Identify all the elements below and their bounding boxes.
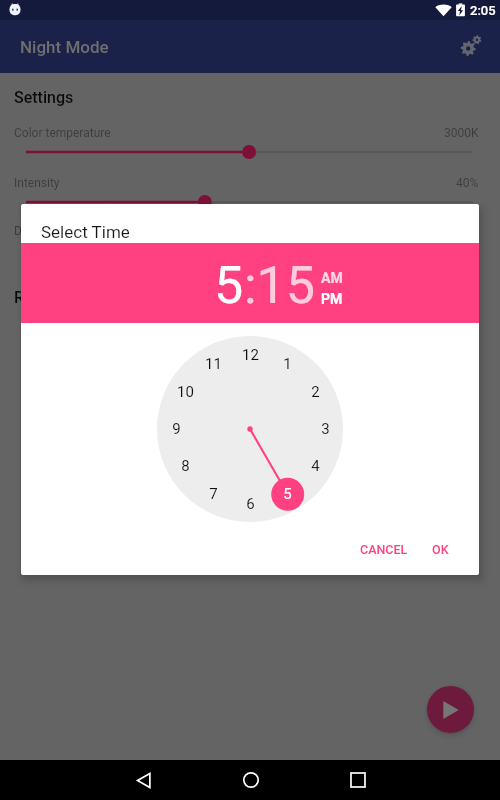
staticText: 2:05	[470, 3, 496, 18]
button[interactable]: 5	[273, 480, 301, 508]
button[interactable]: 8	[171, 452, 199, 480]
button[interactable]: CANCEL	[351, 535, 417, 564]
button[interactable]: 3	[311, 415, 339, 443]
button[interactable]: Home	[231, 760, 271, 800]
button[interactable]: 9	[162, 415, 190, 443]
staticText: Color temperature	[14, 126, 111, 140]
staticText: OK	[432, 542, 449, 557]
staticText: 5	[214, 255, 244, 316]
button[interactable]: 12	[236, 341, 264, 369]
button[interactable]: 6	[236, 490, 264, 518]
staticText: 5	[283, 485, 292, 503]
staticText: 10	[177, 383, 194, 401]
staticText: 40%	[456, 176, 479, 190]
staticText: 7	[209, 485, 218, 503]
button[interactable]: Color temperature	[0, 126, 500, 162]
staticText: Select Time	[41, 222, 130, 242]
button[interactable]: Intensity	[0, 176, 500, 212]
button[interactable]: PM	[321, 291, 343, 307]
button[interactable]: Settings	[451, 27, 491, 67]
button[interactable]: Back	[124, 760, 164, 800]
button[interactable]: OK	[423, 535, 458, 564]
button[interactable]: 10	[171, 378, 199, 406]
button[interactable]: 7	[199, 480, 227, 508]
button[interactable]: :15	[244, 255, 316, 316]
staticText: 1	[283, 355, 292, 373]
staticText: 12	[242, 346, 259, 364]
staticText: CANCEL	[360, 542, 408, 557]
staticText: 9	[172, 420, 181, 438]
button[interactable]: Start night mode	[427, 686, 474, 733]
staticText: 6	[246, 495, 255, 513]
staticText: Settings	[14, 88, 74, 107]
staticText: AM	[321, 270, 343, 286]
button[interactable]: Clock face	[157, 336, 343, 522]
staticText: Intensity	[14, 176, 60, 190]
staticText: Reminders	[14, 288, 92, 307]
staticText: Night Mode	[20, 37, 109, 57]
button[interactable]: 11	[199, 350, 227, 378]
button[interactable]: Recent apps	[338, 760, 378, 800]
staticText: :15	[244, 255, 316, 316]
staticText: 3000K	[444, 126, 479, 140]
button[interactable]: 4	[301, 452, 329, 480]
staticText: PM	[321, 291, 343, 307]
button[interactable]: 2	[301, 378, 329, 406]
staticText: 2	[311, 383, 320, 401]
staticText: 8	[181, 457, 190, 475]
staticText: 4	[311, 457, 320, 475]
button[interactable]: 1	[273, 350, 301, 378]
button[interactable]: AM	[321, 270, 343, 286]
staticText: Dim screen	[14, 224, 75, 238]
button[interactable]: 5	[214, 255, 244, 316]
staticText: 11	[205, 355, 222, 373]
staticText: 3	[321, 420, 330, 438]
